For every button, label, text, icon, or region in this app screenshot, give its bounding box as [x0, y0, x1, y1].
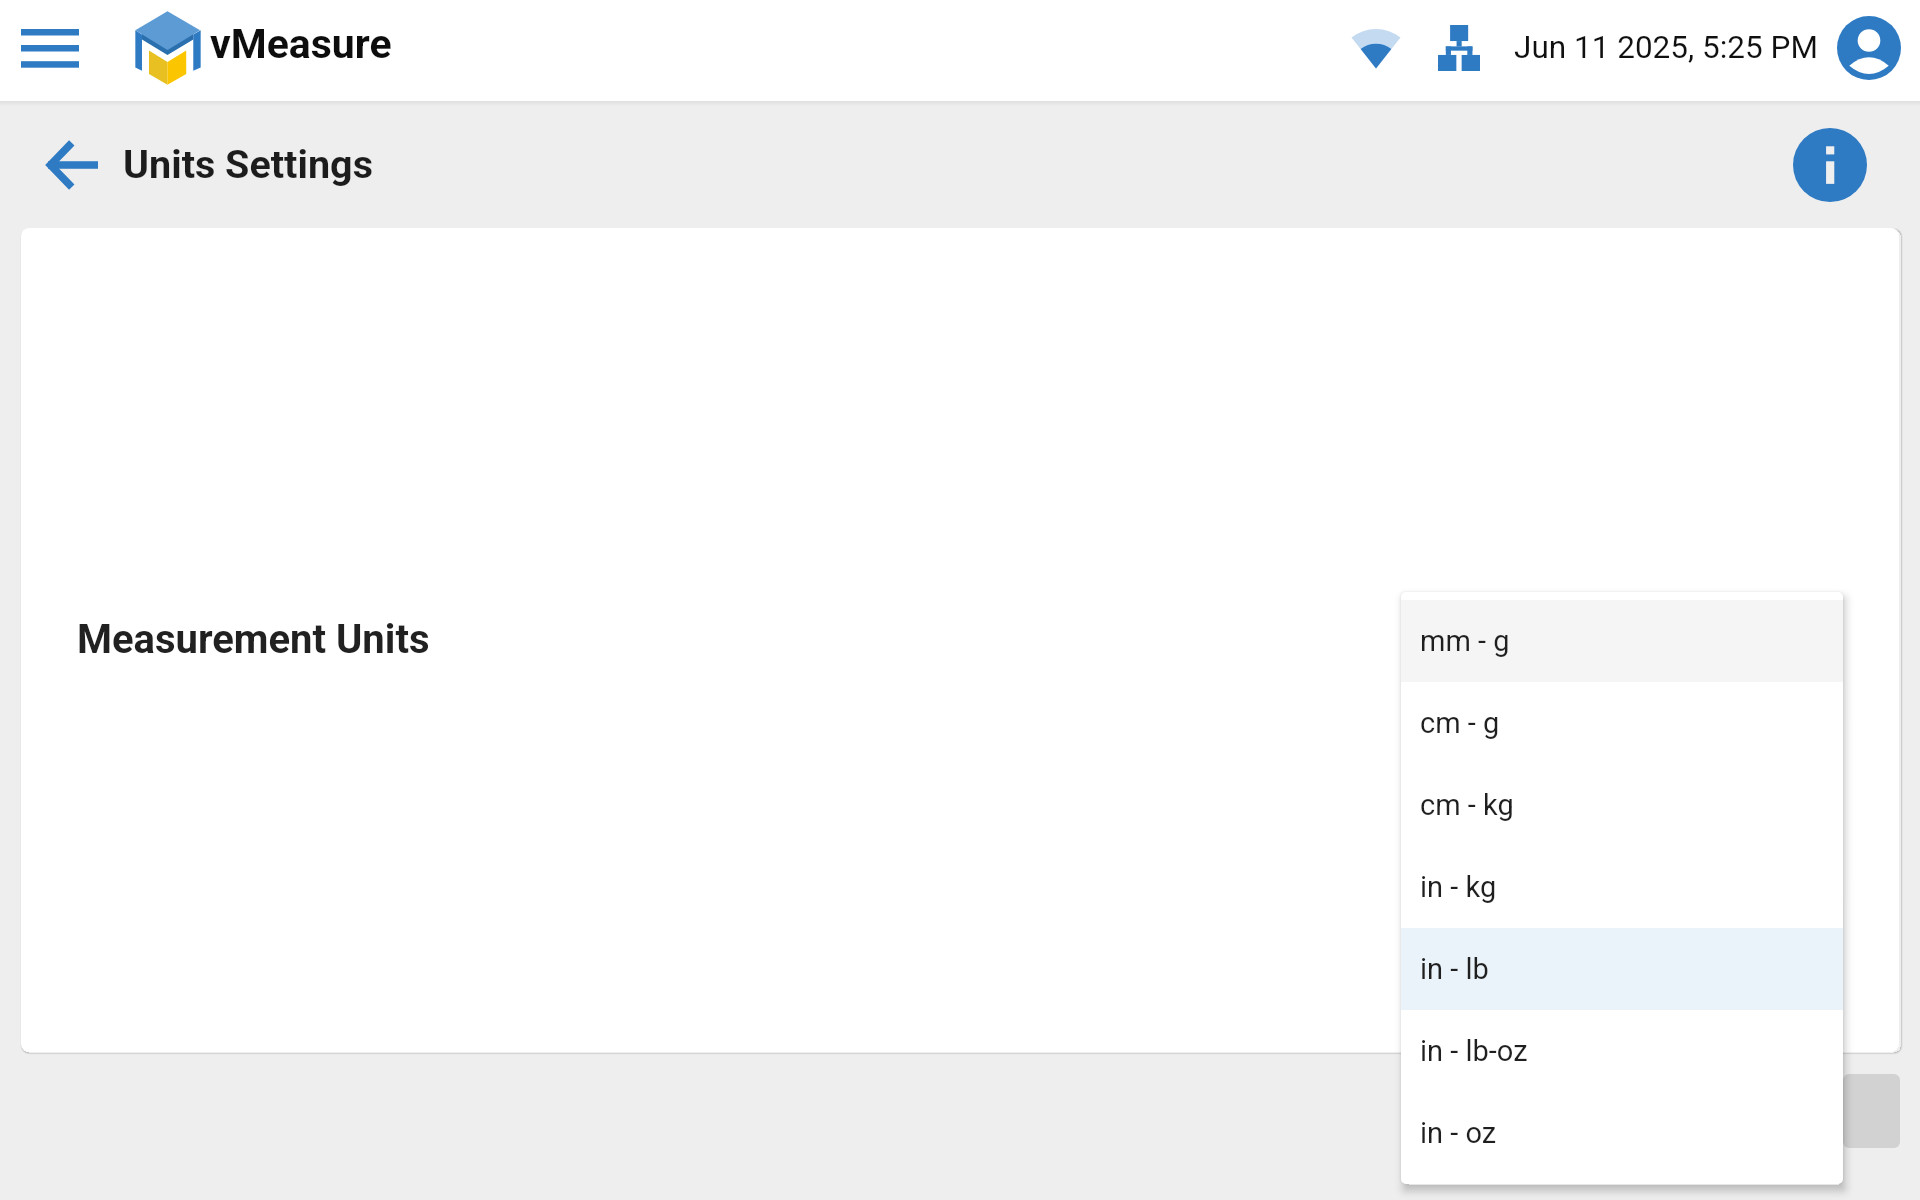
button[interactable]: in - lb: [1401, 928, 1843, 1010]
button[interactable]: in - oz: [1401, 1092, 1843, 1174]
staticText: in - lb-oz: [1420, 1034, 1528, 1068]
staticText: cm - kg: [1420, 788, 1514, 822]
staticText: Measurement Units: [77, 616, 430, 663]
staticText: in - kg: [1420, 870, 1497, 904]
button[interactable]: in - kg: [1401, 846, 1843, 928]
button[interactable]: Menu: [21, 22, 79, 78]
button[interactable]: cm - kg: [1401, 764, 1843, 846]
staticText: Jun 11 2025, 5:25 PM: [1514, 29, 1818, 66]
button[interactable]: Network: [1438, 25, 1480, 71]
staticText: vMeasure: [210, 20, 392, 68]
button[interactable]: mm - g: [1401, 600, 1843, 682]
button[interactable]: in - lb-oz: [1401, 1010, 1843, 1092]
staticText: in - oz: [1420, 1116, 1497, 1150]
staticText: cm - g: [1420, 706, 1500, 740]
button[interactable]: cm - g: [1401, 682, 1843, 764]
button[interactable]: Wi-Fi: [1348, 24, 1404, 74]
button[interactable]: Account: [1837, 16, 1901, 80]
staticText: in - lb: [1420, 952, 1489, 986]
staticText: Units Settings: [123, 141, 373, 187]
button[interactable]: Back: [34, 129, 108, 201]
button[interactable]: Save: [1843, 1074, 1900, 1148]
staticText: mm - g: [1420, 624, 1510, 658]
button[interactable]: Information: [1793, 128, 1867, 202]
